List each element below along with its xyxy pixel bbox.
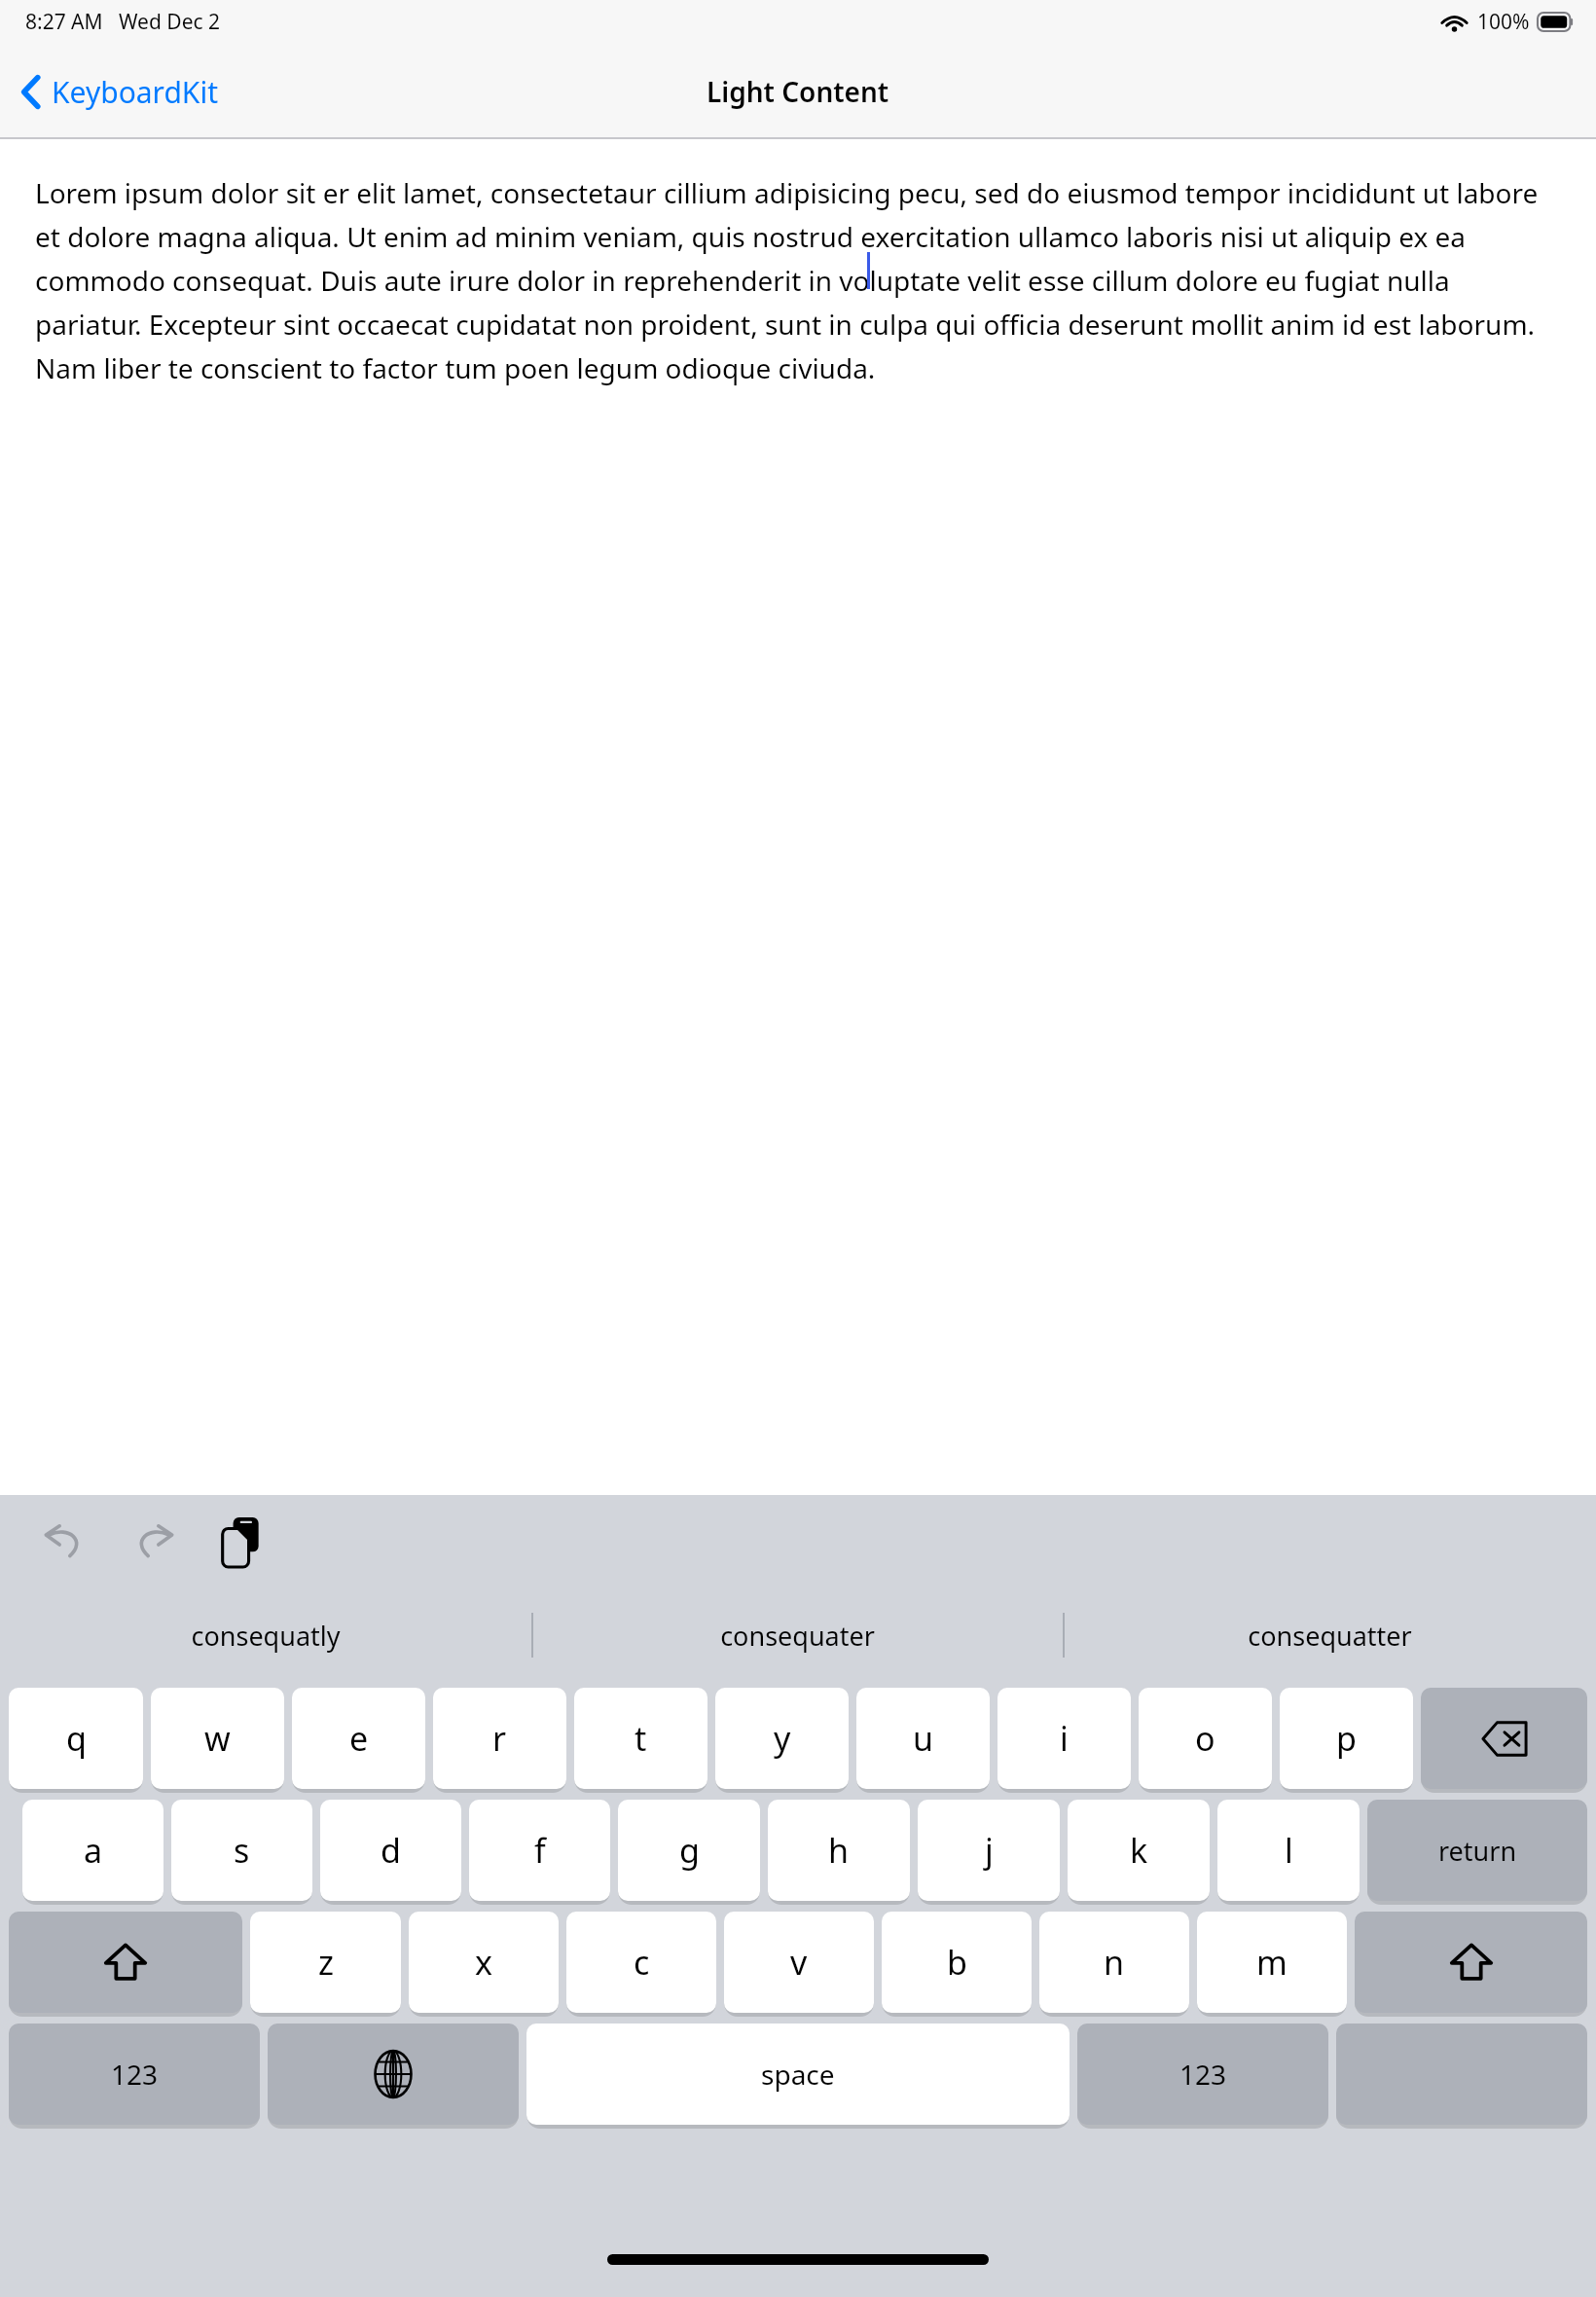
staticText: n bbox=[1104, 1940, 1125, 1985]
button[interactable]: return bbox=[1367, 1800, 1587, 1901]
button[interactable]: x bbox=[409, 1912, 559, 2013]
button[interactable]: b bbox=[882, 1912, 1032, 2013]
button[interactable]: space bbox=[526, 2024, 1070, 2125]
button[interactable]: d bbox=[320, 1800, 461, 1901]
button[interactable]: l bbox=[1217, 1800, 1360, 1901]
button[interactable]: consequater bbox=[531, 1590, 1064, 1680]
button[interactable]: consequatly bbox=[0, 1590, 531, 1680]
button[interactable]: j bbox=[918, 1800, 1060, 1901]
button[interactable]: Dismiss keyboard bbox=[206, 1508, 276, 1578]
button[interactable]: Undo bbox=[29, 1508, 99, 1578]
button[interactable]: 123 bbox=[1077, 2024, 1328, 2125]
staticText: m bbox=[1256, 1940, 1288, 1985]
staticText: i bbox=[1060, 1716, 1069, 1761]
staticText: p bbox=[1336, 1716, 1357, 1761]
staticText: r bbox=[492, 1716, 507, 1761]
staticText: t bbox=[635, 1716, 647, 1761]
staticText: o bbox=[1195, 1716, 1215, 1761]
staticText: b bbox=[947, 1940, 967, 1985]
button[interactable]: Shift bbox=[1355, 1912, 1587, 2013]
button[interactable]: o bbox=[1139, 1688, 1272, 1789]
staticText: consequater bbox=[720, 1618, 875, 1654]
button[interactable]: a bbox=[22, 1800, 163, 1901]
staticText: KeyboardKit bbox=[52, 72, 218, 112]
button[interactable]: v bbox=[724, 1912, 874, 2013]
staticText: 123 bbox=[111, 2056, 159, 2093]
button[interactable]: t bbox=[574, 1688, 707, 1789]
button[interactable]: k bbox=[1068, 1800, 1210, 1901]
staticText: f bbox=[534, 1828, 546, 1873]
button[interactable]: Shift bbox=[9, 1912, 242, 2013]
staticText: 123 bbox=[1179, 2056, 1227, 2093]
button[interactable]: consequatter bbox=[1064, 1590, 1596, 1680]
staticText: return bbox=[1438, 1833, 1517, 1869]
staticText: h bbox=[828, 1828, 850, 1873]
button[interactable]: n bbox=[1039, 1912, 1189, 2013]
button[interactable]: q bbox=[9, 1688, 143, 1789]
staticText: k bbox=[1130, 1828, 1148, 1873]
staticText: u bbox=[913, 1716, 934, 1761]
staticText: v bbox=[790, 1940, 808, 1985]
button[interactable]: e bbox=[292, 1688, 425, 1789]
staticText: z bbox=[318, 1940, 334, 1985]
staticText: consequatly bbox=[191, 1618, 341, 1654]
button[interactable]: f bbox=[469, 1800, 610, 1901]
staticText: y bbox=[774, 1716, 791, 1761]
staticText: q bbox=[66, 1716, 87, 1761]
staticText: e bbox=[349, 1716, 369, 1761]
button[interactable]: p bbox=[1280, 1688, 1413, 1789]
staticText: x bbox=[475, 1940, 492, 1985]
button[interactable]: h bbox=[768, 1800, 910, 1901]
button[interactable]: s bbox=[171, 1800, 312, 1901]
staticText: j bbox=[985, 1828, 994, 1873]
button[interactable]: y bbox=[715, 1688, 849, 1789]
button[interactable]: Redo bbox=[119, 1508, 189, 1578]
staticText: d bbox=[381, 1828, 401, 1873]
staticText: g bbox=[679, 1828, 700, 1873]
button[interactable]: r bbox=[433, 1688, 566, 1789]
staticText: Wed Dec 2 bbox=[119, 8, 221, 36]
staticText: consequatter bbox=[1248, 1618, 1412, 1654]
button[interactable]: KeyboardKit bbox=[0, 60, 236, 124]
staticText: 100% bbox=[1477, 8, 1530, 36]
staticText: 8:27 AM bbox=[25, 8, 103, 36]
button[interactable]: c bbox=[566, 1912, 716, 2013]
button[interactable]: 123 bbox=[9, 2024, 260, 2125]
button[interactable]: u bbox=[856, 1688, 990, 1789]
button[interactable]: w bbox=[151, 1688, 284, 1789]
button[interactable]: z bbox=[250, 1912, 401, 2013]
staticText: Light Content bbox=[707, 73, 889, 110]
staticText: a bbox=[84, 1828, 103, 1873]
button[interactable]: i bbox=[997, 1688, 1131, 1789]
staticText: space bbox=[761, 2056, 835, 2093]
staticText: c bbox=[634, 1940, 650, 1985]
staticText: l bbox=[1285, 1828, 1293, 1873]
button[interactable]: m bbox=[1197, 1912, 1347, 2013]
button[interactable]: Backspace bbox=[1421, 1688, 1587, 1789]
staticText: s bbox=[234, 1828, 250, 1873]
button[interactable]: Next keyboard bbox=[268, 2024, 519, 2125]
staticText: Lorem ipsum dolor sit er elit lamet, con… bbox=[35, 174, 1561, 387]
staticText: w bbox=[204, 1716, 231, 1761]
button[interactable]: g bbox=[618, 1800, 760, 1901]
